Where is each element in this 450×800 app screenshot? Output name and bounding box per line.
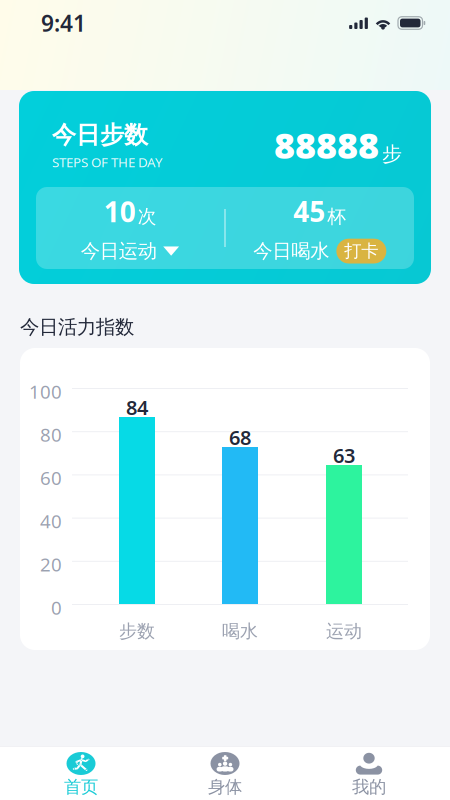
- staticText: 喝水: [222, 620, 258, 643]
- staticText: 84: [126, 394, 148, 421]
- staticText: 运动: [326, 620, 362, 643]
- staticText: 身体: [208, 776, 242, 798]
- staticText: 次: [138, 205, 157, 228]
- staticText: 45: [293, 192, 325, 230]
- staticText: 今日喝水: [253, 239, 329, 263]
- staticText: 68: [229, 424, 251, 451]
- staticText: 20: [40, 552, 62, 577]
- staticText: 9:41: [41, 8, 86, 38]
- staticText: 今日活力指数: [20, 315, 134, 339]
- staticText: 打卡: [344, 240, 378, 262]
- staticText: 63: [333, 442, 355, 469]
- staticText: 40: [40, 509, 62, 533]
- staticText: 我的: [352, 776, 386, 798]
- staticText: 80: [40, 422, 62, 447]
- staticText: 60: [40, 465, 62, 490]
- staticText: STEPS OF THE DAY: [52, 153, 163, 171]
- staticText: 100: [29, 379, 62, 404]
- staticText: 0: [51, 595, 62, 620]
- staticText: 今日步数: [52, 120, 148, 150]
- button[interactable]: 首页: [9, 746, 153, 800]
- staticText: 今日运动: [81, 239, 157, 263]
- staticText: 首页: [64, 776, 98, 798]
- staticText: 步数: [119, 620, 155, 643]
- button[interactable]: 我的: [297, 746, 441, 800]
- button[interactable]: 打卡: [336, 239, 386, 263]
- staticText: 10: [104, 193, 136, 230]
- staticText: 88888: [274, 121, 379, 169]
- staticText: 杯: [327, 205, 346, 228]
- button[interactable]: 身体: [153, 746, 297, 800]
- staticText: 步: [382, 142, 402, 167]
